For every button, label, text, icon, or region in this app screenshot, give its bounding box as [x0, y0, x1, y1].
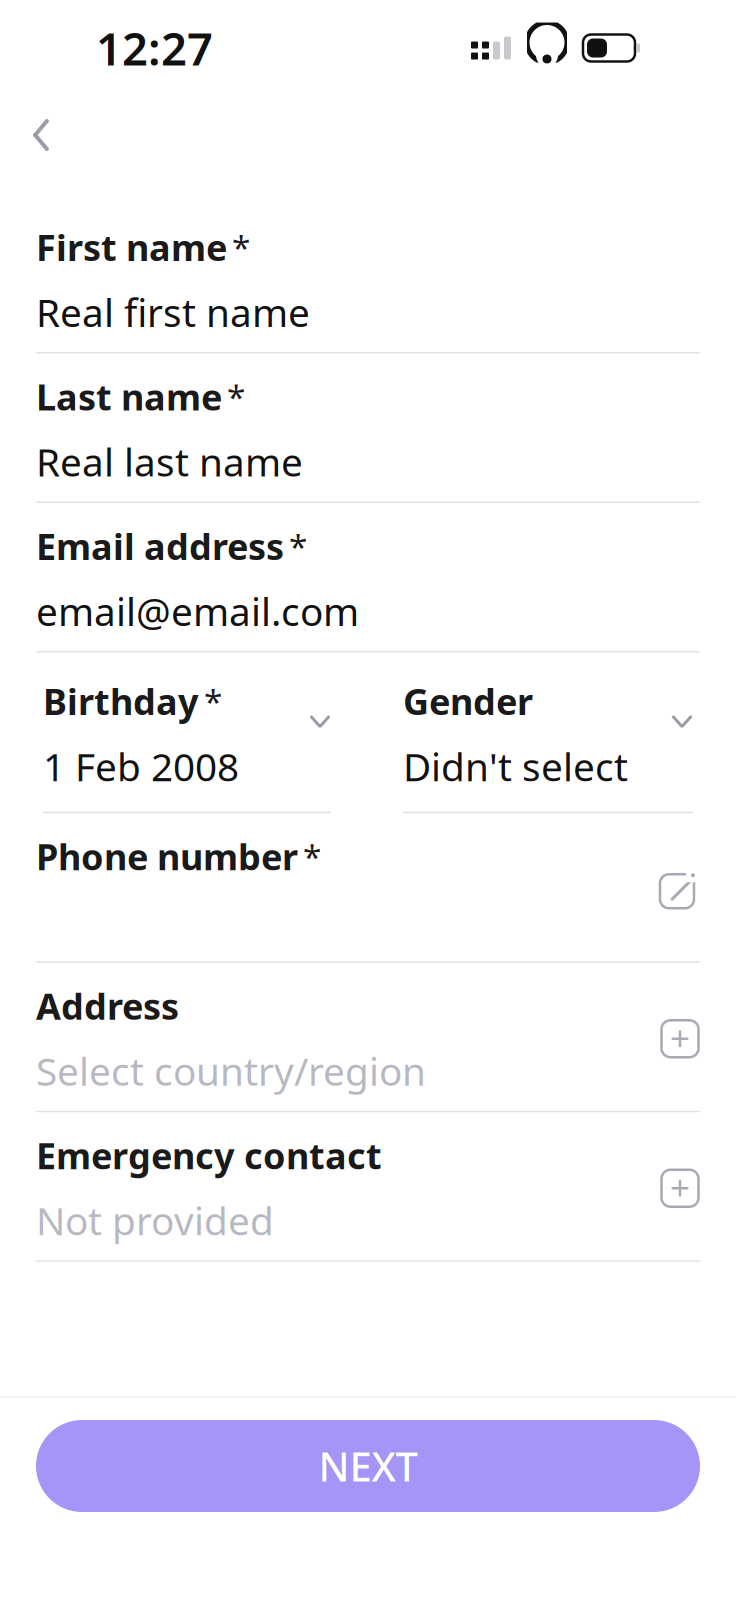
staticText: * [289, 524, 307, 568]
button[interactable]: Emergency contact [0, 1138, 736, 1262]
staticText: Birthday [43, 677, 199, 725]
button[interactable]: Last name [0, 379, 736, 503]
staticText: 12:27 [96, 18, 213, 78]
staticText: Last name [36, 373, 222, 420]
staticText: NEXT [318, 1439, 417, 1492]
staticText: Select country/region [36, 1045, 426, 1096]
button[interactable]: Add emergency contact [660, 1168, 700, 1208]
staticText: Email address [36, 522, 284, 570]
staticText: Real last name [36, 436, 303, 487]
staticText: email@email.com [36, 585, 359, 637]
button[interactable]: Email address [0, 529, 736, 652]
button[interactable]: Address [0, 989, 736, 1112]
button[interactable]: Birthday [43, 678, 331, 813]
staticText: Emergency contact [36, 1131, 382, 1179]
staticText: * [204, 679, 222, 723]
button[interactable]: First name [0, 230, 736, 353]
staticText: * [232, 225, 250, 269]
staticText: * [303, 834, 321, 878]
button[interactable]: Gender [403, 678, 693, 813]
staticText: 1 Feb 2008 [43, 740, 239, 792]
staticText: Not provided [36, 1195, 274, 1246]
button[interactable]: Phone number [0, 839, 736, 963]
staticText: Gender [403, 677, 533, 725]
button[interactable]: NEXT [36, 1420, 700, 1512]
staticText: Phone number [36, 832, 298, 880]
button[interactable]: Back [0, 101, 76, 169]
button[interactable]: Edit phone number [658, 868, 700, 910]
button[interactable]: Add address [660, 1019, 700, 1059]
staticText: Address [36, 982, 179, 1030]
staticText: Real first name [36, 286, 310, 338]
staticText: Didn't select [403, 740, 628, 792]
staticText: * [227, 374, 245, 419]
staticText: First name [36, 223, 227, 271]
